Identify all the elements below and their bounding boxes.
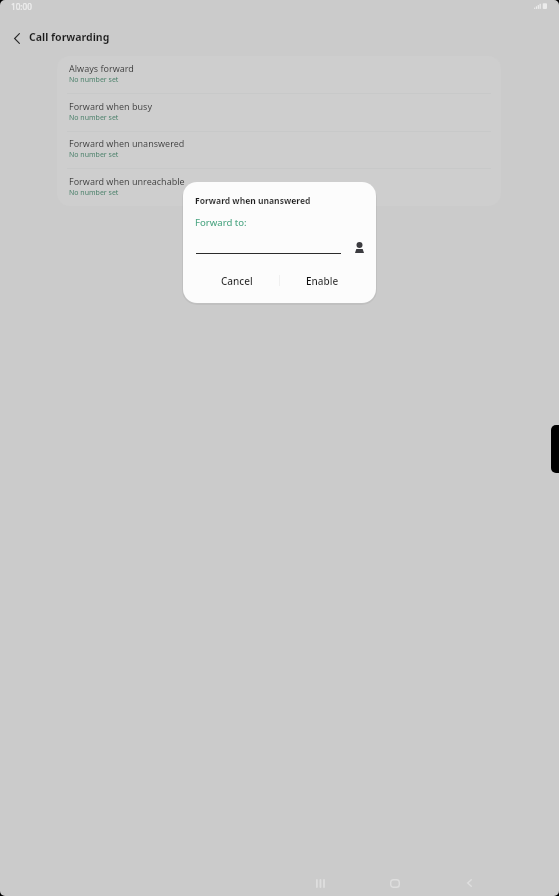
button[interactable]: Enable — [280, 265, 365, 296]
button[interactable]: Phone number — [196, 236, 341, 254]
staticText: Enable — [306, 274, 339, 288]
staticText: Forward when busy — [69, 100, 152, 112]
button[interactable]: Forward when unreachable — [57, 169, 501, 206]
staticText: No number set — [69, 113, 119, 123]
staticText: Cancel — [221, 274, 253, 288]
staticText: Forward when unanswered — [69, 137, 185, 149]
button[interactable]: Choose contact — [347, 235, 371, 259]
button[interactable]: Recent apps — [310, 872, 330, 892]
button[interactable]: Forward when unanswered — [57, 131, 501, 169]
staticText: Forward when unanswered — [195, 195, 311, 207]
button[interactable]: Forward when busy — [57, 94, 501, 132]
button[interactable]: Cancel — [194, 265, 279, 296]
staticText: No number set — [69, 188, 119, 198]
button[interactable]: Back — [459, 872, 479, 892]
staticText: Always forward — [69, 62, 134, 74]
button[interactable]: Navigate up — [6, 26, 28, 50]
staticText: 10:00 — [11, 1, 32, 12]
button[interactable]: Home — [385, 872, 405, 892]
staticText: No number set — [69, 150, 119, 160]
staticText: No number set — [69, 75, 119, 85]
staticText: Forward to: — [195, 216, 247, 229]
button[interactable]: Always forward — [57, 56, 501, 94]
staticText: Forward when unreachable — [69, 175, 185, 187]
staticText: Call forwarding — [29, 30, 110, 44]
